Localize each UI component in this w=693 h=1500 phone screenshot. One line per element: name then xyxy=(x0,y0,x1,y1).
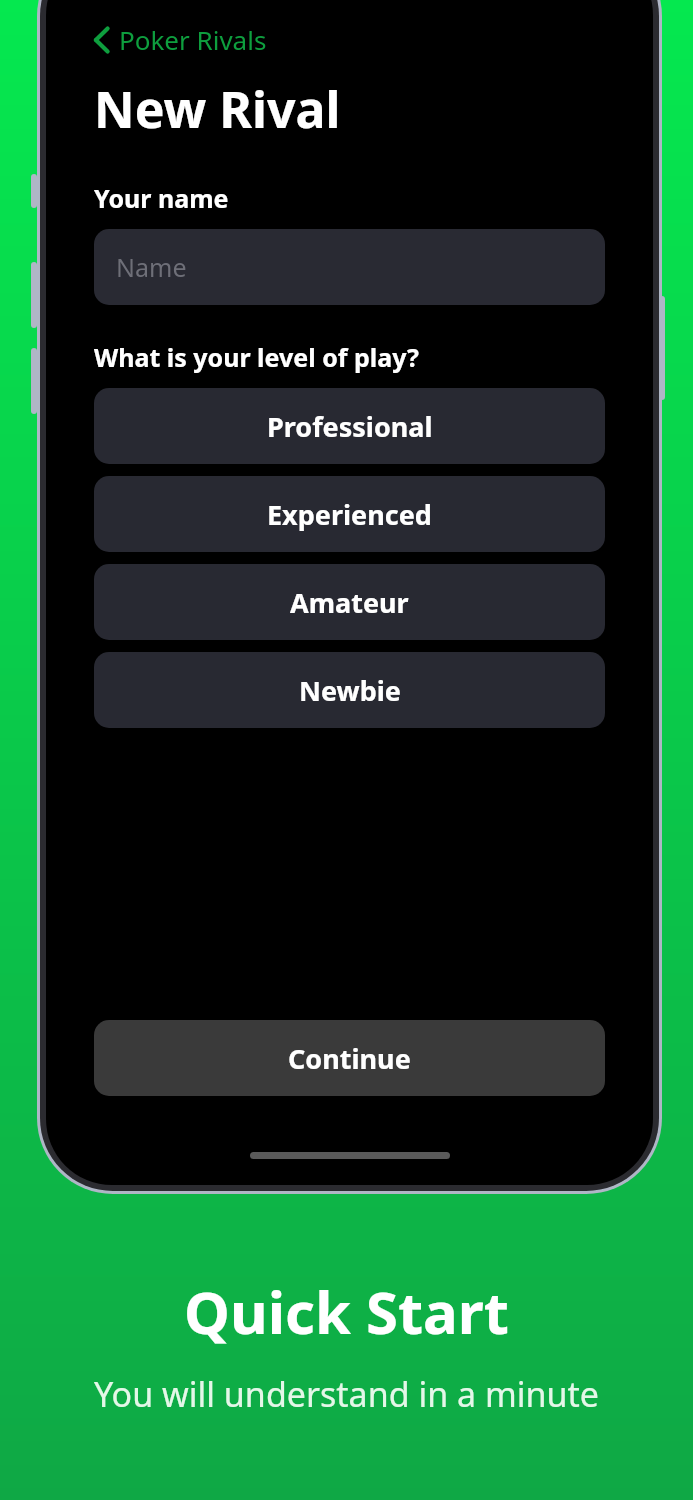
button[interactable]: Experienced xyxy=(94,476,605,552)
button[interactable]: Continue xyxy=(94,1020,605,1096)
staticText: New Rival xyxy=(94,75,341,143)
staticText: Newbie xyxy=(299,672,401,709)
button[interactable]: Poker Rivals xyxy=(86,18,275,61)
staticText: Quick Start xyxy=(184,1272,509,1351)
button[interactable]: Name xyxy=(94,229,605,305)
staticText: You will understand in a minute xyxy=(94,1371,599,1417)
staticText: Poker Rivals xyxy=(119,22,267,57)
staticText: Name xyxy=(116,250,187,284)
staticText: Professional xyxy=(267,408,433,445)
button[interactable]: Newbie xyxy=(94,652,605,728)
staticText: Your name xyxy=(94,181,229,215)
staticText: Amateur xyxy=(290,584,409,621)
button[interactable]: Amateur xyxy=(94,564,605,640)
button[interactable]: Professional xyxy=(94,388,605,464)
staticText: Experienced xyxy=(267,496,432,533)
staticText: Continue xyxy=(288,1040,411,1077)
staticText: What is your level of play? xyxy=(94,340,419,374)
